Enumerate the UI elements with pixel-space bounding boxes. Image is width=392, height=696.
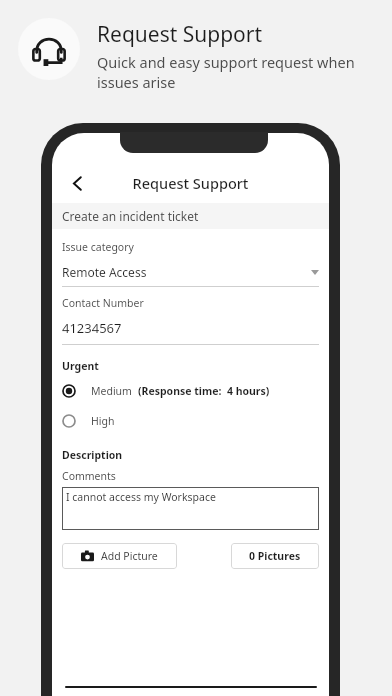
staticText: I cannot access my Workspace [66,490,216,504]
staticText: Medium [91,384,132,398]
staticText: Request Support [52,173,329,193]
staticText: Description [62,448,123,462]
staticText: Urgent [62,359,99,373]
staticText: Create an incident ticket [62,208,199,224]
staticText: Remote Access [62,264,311,280]
staticText: High [91,414,115,428]
button[interactable]: 41234567 [62,319,319,337]
button[interactable]: Back [60,166,94,200]
staticText: Contact Number [62,296,144,310]
staticText: Issue category [62,240,134,254]
staticText: 41234567 [62,319,122,337]
button[interactable]: Add Picture [62,543,177,569]
staticText: Comments [62,469,116,483]
button[interactable]: I cannot access my Workspace [62,487,319,530]
button[interactable]: Medium [62,380,319,402]
button[interactable]: Remote Access [62,264,319,280]
button[interactable]: 0 Pictures [231,543,319,569]
staticText: Quick and easy support request when issu… [97,52,392,92]
staticText: (Response time: 4 hours) [138,384,270,398]
staticText: Add Picture [101,549,158,563]
staticText: Request Support [97,20,263,49]
staticText: 0 Pictures [249,549,301,563]
button[interactable]: High [62,410,319,432]
